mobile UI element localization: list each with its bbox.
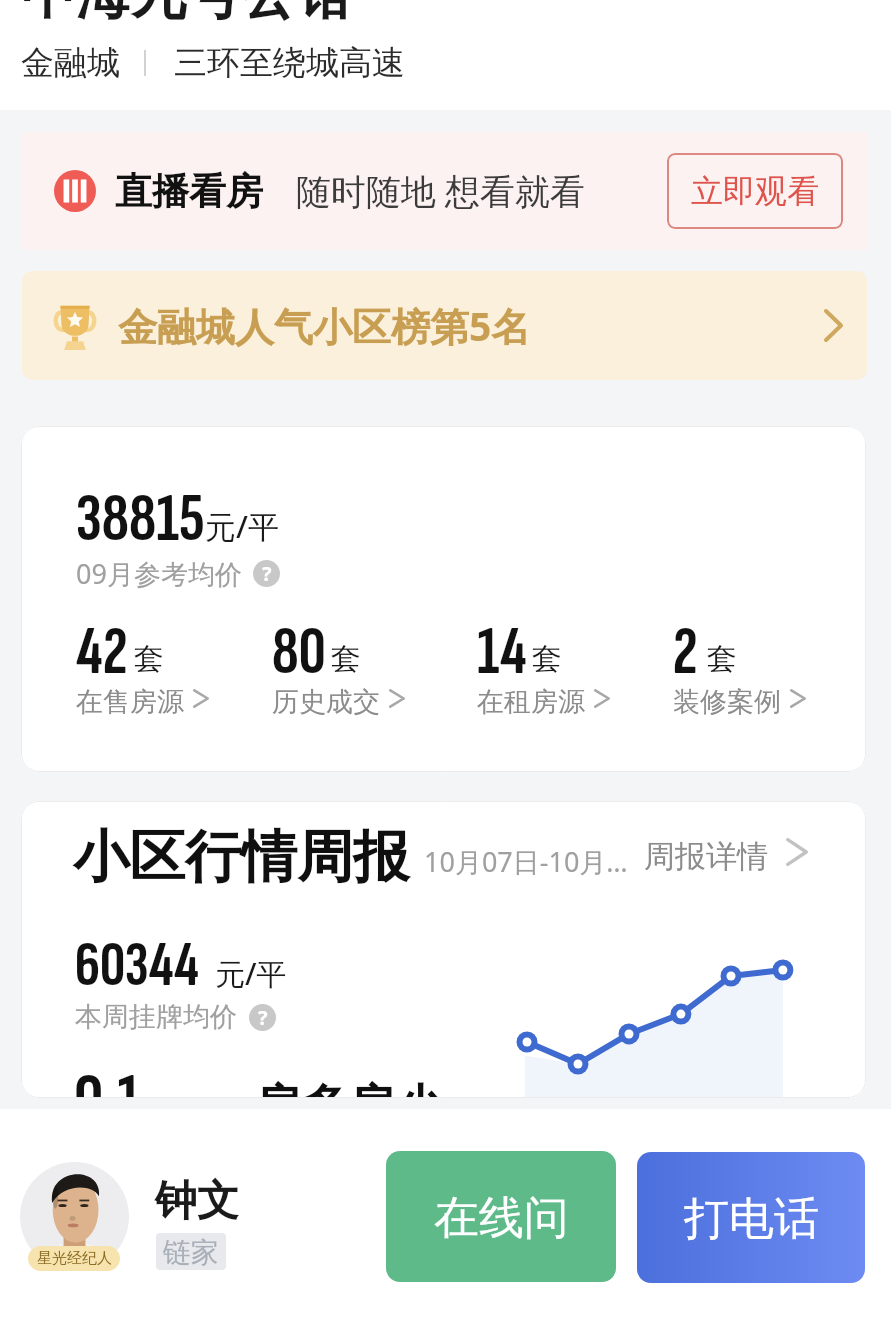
button[interactable]: 立即观看 — [667, 153, 843, 229]
staticText: 38815 — [76, 478, 205, 561]
button[interactable]: 直播看房 — [22, 132, 867, 250]
staticText: 直播看房 — [115, 168, 263, 215]
staticText: 链家 — [163, 1235, 219, 1270]
staticText: 立即观看 — [691, 171, 819, 211]
staticText: 打电话 — [684, 1191, 819, 1248]
staticText: 钟文 — [155, 1175, 239, 1228]
staticText: 套 — [134, 640, 164, 678]
staticText: 元/平 — [205, 505, 279, 547]
button[interactable]: 在线问 — [386, 1151, 616, 1282]
staticText: 小区行情周报 — [73, 822, 409, 893]
staticText: 42 — [76, 612, 128, 693]
button[interactable]: 14 — [477, 620, 635, 715]
staticText: 套 — [532, 640, 562, 678]
staticText: 三环至绕城高速 — [174, 42, 405, 84]
staticText: 金融城人气小区榜第5名 — [118, 299, 531, 352]
staticText: 星光经纪人 — [37, 1249, 112, 1268]
button[interactable]: 金融城人气小区榜第5名 — [22, 271, 867, 380]
staticText: 历史成交 — [272, 685, 380, 719]
staticText: 房多房少 — [254, 1078, 442, 1098]
staticText: 10月07日-10月… — [424, 843, 628, 880]
staticText: 14 — [477, 612, 527, 693]
staticText: ? — [258, 1004, 268, 1031]
staticText: 在售房源 — [76, 685, 184, 719]
staticText: 60344 — [75, 928, 199, 1004]
staticText: 周报详情 — [644, 837, 768, 876]
button[interactable]: 2 — [673, 620, 831, 715]
button[interactable]: 星光经纪人 — [20, 1162, 129, 1271]
staticText: 中海九号公馆 — [21, 0, 351, 29]
button[interactable]: 42 — [76, 620, 234, 715]
button[interactable]: 80 — [272, 620, 430, 715]
staticText: 80 — [272, 612, 326, 693]
staticText: 元/平 — [215, 953, 287, 994]
button[interactable]: 打电话 — [637, 1152, 865, 1283]
staticText: 随时随地 想看就看 — [296, 167, 586, 215]
staticText: 金融城 — [21, 42, 120, 84]
staticText: 0.1 — [74, 1058, 142, 1098]
staticText: 2 — [673, 612, 698, 693]
staticText: ? — [262, 560, 272, 587]
staticText: 09月参考均价 — [76, 555, 242, 592]
button[interactable]: 周报详情 — [636, 826, 836, 881]
staticText: 本周挂牌均价 — [75, 1000, 237, 1034]
staticText: 在租房源 — [477, 685, 585, 719]
staticText: 套 — [331, 640, 361, 678]
staticText: 在线问 — [434, 1190, 569, 1247]
staticText: 装修案例 — [673, 685, 781, 719]
staticText: 套 — [707, 640, 737, 678]
